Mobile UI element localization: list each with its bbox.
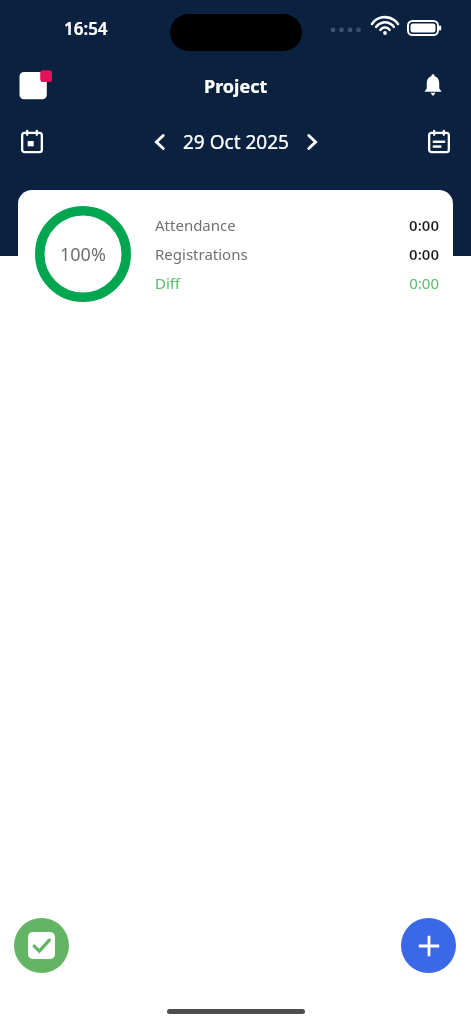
button[interactable]: Next day	[293, 123, 331, 161]
button[interactable]: Previous day	[141, 123, 179, 161]
staticText: Registrations	[155, 244, 248, 264]
staticText: 0:00	[409, 273, 439, 293]
button[interactable]: Approve	[14, 918, 69, 973]
staticText: 100%	[60, 242, 106, 267]
staticText: 16:54	[64, 17, 108, 40]
button[interactable]: Agenda view	[417, 120, 461, 164]
staticText: Diff	[155, 273, 181, 293]
staticText: 29 Oct 2025	[183, 129, 289, 155]
button[interactable]: Projects	[16, 64, 60, 108]
button[interactable]: Add entry	[401, 918, 456, 973]
staticText: 0:00	[409, 215, 439, 235]
staticText: Project	[204, 74, 268, 99]
staticText: Attendance	[155, 215, 236, 235]
staticText: 0:00	[409, 244, 439, 264]
button[interactable]: 100%	[18, 190, 453, 318]
button[interactable]: Notifications	[413, 66, 453, 106]
button[interactable]: Day view	[10, 120, 54, 164]
